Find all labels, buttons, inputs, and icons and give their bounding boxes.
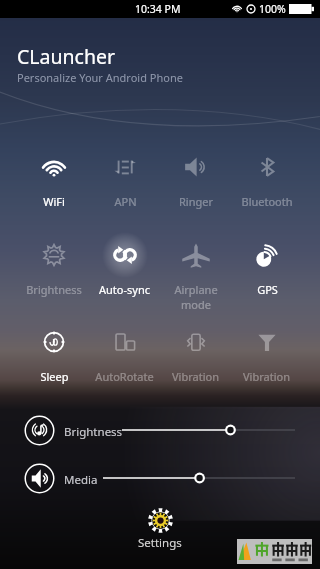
staticText: Personalize Your Android Phone	[17, 70, 183, 85]
button[interactable]: WiFi	[18, 151, 89, 223]
button[interactable]: Settings	[138, 506, 182, 551]
button[interactable]: AutoRotate	[89, 326, 160, 398]
staticText: Vibration	[172, 369, 219, 384]
staticText: Settings	[138, 535, 182, 551]
staticText: Brightness	[64, 424, 123, 440]
button[interactable]: Brightness	[18, 239, 89, 311]
button[interactable]: Vibration	[160, 326, 231, 398]
staticText: Vibration	[243, 369, 290, 384]
button[interactable]: Media	[0, 461, 320, 495]
staticText: Media	[64, 472, 98, 488]
staticText: Brightness	[26, 282, 82, 297]
button[interactable]: GPS	[231, 239, 302, 311]
staticText: CLauncher	[17, 43, 116, 70]
button[interactable]: APN	[89, 151, 160, 223]
button[interactable]: Airplane	[160, 239, 231, 311]
staticText: mode	[181, 297, 211, 311]
staticText: WiFi	[43, 194, 65, 209]
button[interactable]: Sleep	[18, 326, 89, 398]
staticText: AutoRotate	[95, 369, 154, 384]
button[interactable]: Bluetooth	[231, 151, 302, 223]
button[interactable]: Ringer	[160, 151, 231, 223]
staticText: Auto-sync	[99, 282, 150, 297]
staticText: Sleep	[40, 369, 69, 384]
button[interactable]: Auto-sync	[89, 239, 160, 311]
staticText: Airplane	[174, 282, 218, 297]
button[interactable]: Vibration	[231, 326, 302, 398]
staticText: 10:34 PM	[135, 2, 181, 16]
staticText: GPS	[257, 282, 278, 297]
staticText: Ringer	[179, 194, 213, 209]
button[interactable]: Brightness	[0, 413, 320, 447]
staticText: Bluetooth	[241, 194, 293, 209]
staticText: 100%	[259, 2, 286, 16]
staticText: APN	[114, 194, 137, 209]
